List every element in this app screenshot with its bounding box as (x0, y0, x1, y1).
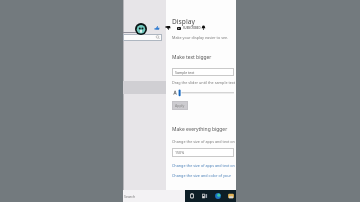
button[interactable]: Like (154, 25, 160, 31)
button[interactable]: Text size slider (172, 88, 234, 97)
staticText: Change the size of apps and text on othe… (172, 163, 236, 168)
button[interactable]: SUBSCRIBED (177, 25, 201, 31)
button[interactable]: Channel avatar (135, 23, 147, 35)
button[interactable]: Notifications (201, 25, 206, 30)
staticText: Sample text (175, 70, 195, 75)
button[interactable]: Find a setting (123, 34, 162, 41)
staticText: Make everything bigger (172, 126, 236, 133)
staticText: Change the size of apps and text on the … (172, 139, 236, 144)
staticText: Search (124, 194, 136, 199)
button[interactable]: File Explorer (227, 192, 235, 200)
staticText: Make your display easier to see. (172, 35, 236, 40)
button[interactable]: 150% (172, 148, 234, 157)
staticText: Change the size and color of your cursor… (172, 173, 236, 178)
button[interactable]: Start (188, 192, 196, 200)
staticText: Display (172, 17, 236, 26)
button[interactable]: Sample text (172, 68, 234, 76)
staticText: Make text bigger (172, 54, 236, 61)
staticText: SUBSCRIBED (183, 26, 201, 30)
button[interactable]: Apply (172, 101, 188, 110)
staticText: Apply (175, 103, 185, 108)
button[interactable]: Dislike (165, 25, 171, 31)
button[interactable]: Task view (201, 192, 209, 200)
staticText: 150% (175, 150, 185, 155)
button[interactable]: Microsoft Edge (214, 192, 222, 200)
staticText: Drag the slider until the sample text is… (172, 80, 236, 85)
